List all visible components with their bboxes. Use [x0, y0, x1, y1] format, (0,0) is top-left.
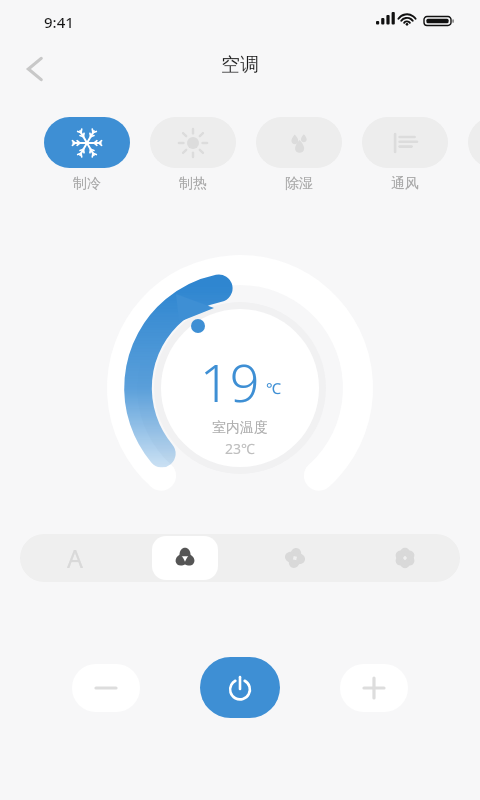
button[interactable]: 制冷: [44, 117, 130, 193]
staticText: 通风: [391, 175, 419, 193]
button[interactable]: 通风: [362, 117, 448, 193]
staticText: 9:41: [44, 12, 74, 32]
button[interactable]: Auto fan speed: [40, 534, 110, 582]
staticText: 空调: [0, 53, 480, 77]
button[interactable]: Power: [200, 657, 280, 718]
button[interactable]: 除湿: [256, 117, 342, 193]
staticText: ℃: [266, 378, 281, 398]
button[interactable]: 制热: [150, 117, 236, 193]
button[interactable]: Increase temperature: [340, 664, 408, 712]
staticText: 室内温度: [212, 419, 268, 437]
staticText: 制冷: [73, 175, 101, 193]
staticText: 制热: [179, 175, 207, 193]
staticText: 23℃: [225, 439, 255, 458]
button[interactable]: Decrease temperature: [72, 664, 140, 712]
button[interactable]: Fan speed 2: [260, 534, 330, 582]
button[interactable]: [468, 117, 480, 168]
button[interactable]: Back: [18, 50, 58, 88]
staticText: 19: [200, 346, 260, 417]
button[interactable]: Fan speed 3: [370, 534, 440, 582]
staticText: 除湿: [285, 175, 313, 193]
button[interactable]: Fan speed 1: [150, 534, 220, 582]
staticText: A: [67, 541, 83, 575]
